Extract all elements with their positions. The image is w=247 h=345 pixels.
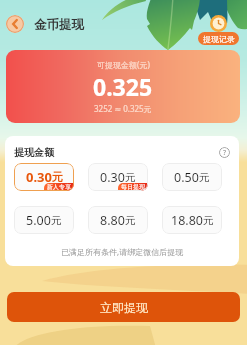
staticText: 元	[203, 214, 214, 227]
staticText: 金币提现	[34, 17, 84, 33]
staticText: 可提现金额(元)	[97, 59, 150, 70]
staticText: 提现记录	[203, 34, 235, 44]
button[interactable]: 5.00	[14, 206, 74, 234]
staticText: 5.00	[26, 212, 51, 229]
button[interactable]: Back	[6, 15, 24, 33]
staticText: 每日提现	[121, 183, 145, 191]
staticText: 0.30	[100, 169, 125, 186]
button[interactable]: 立即提现	[7, 292, 240, 322]
staticText: 立即提现	[100, 300, 148, 315]
button[interactable]: 0.30	[88, 163, 148, 191]
staticText: ?	[223, 148, 227, 158]
button[interactable]: 提现记录	[198, 32, 239, 45]
staticText: 8.80	[100, 212, 125, 229]
staticText: 18.80	[171, 212, 203, 229]
staticText: 新人专享	[47, 183, 71, 191]
staticText: 3252 ≈ 0.325元	[94, 103, 152, 114]
staticText: 提现金额	[14, 146, 54, 159]
button[interactable]: 8.80	[88, 206, 148, 234]
staticText: 元	[125, 214, 136, 227]
staticText: 元	[125, 171, 136, 184]
staticText: 元	[52, 170, 63, 184]
button[interactable]: 0.30	[14, 163, 74, 191]
staticText: 已满足所有条件,请绑定微信后提现	[61, 246, 184, 257]
staticText: 元	[51, 214, 62, 227]
button[interactable]: 18.80	[162, 206, 222, 234]
button[interactable]: 0.50	[162, 163, 222, 191]
staticText: 0.30	[26, 168, 52, 186]
button[interactable]: Help	[219, 147, 230, 158]
staticText: 元	[199, 171, 210, 184]
staticText: 0.325	[93, 71, 153, 102]
button[interactable]: Withdraw record icon	[210, 15, 227, 32]
staticText: 0.50	[174, 169, 199, 186]
